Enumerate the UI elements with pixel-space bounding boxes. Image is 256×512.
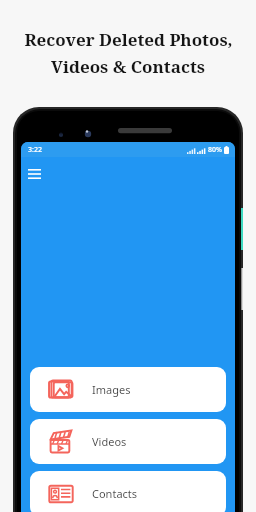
button[interactable]: Videos [30,419,226,464]
staticText: Contacts [92,486,138,501]
staticText: Videos & Contacts [51,55,205,78]
button[interactable]: Images [30,367,226,412]
staticText: Images [92,382,131,397]
staticText: 80% [208,145,222,155]
button[interactable]: Menu [28,165,46,183]
staticText: Recover Deleted Photos, [24,28,233,51]
staticText: Videos [92,434,127,449]
staticText: 3:22 [28,145,42,155]
button[interactable]: Contacts [30,471,226,512]
